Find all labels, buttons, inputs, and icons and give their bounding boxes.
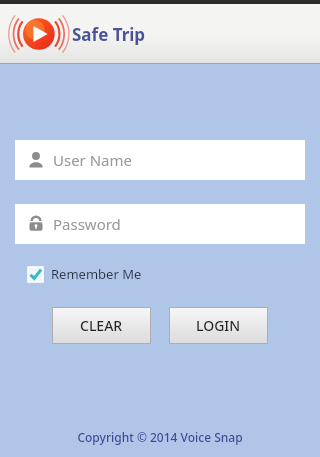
other: Safe Trip logo [14, 12, 68, 56]
button[interactable]: Remember Me [26, 263, 144, 285]
staticText: Copyright © 2014 Voice Snap [77, 429, 243, 445]
staticText: LOGIN [196, 316, 241, 335]
staticText: Safe Trip [72, 23, 146, 46]
staticText: Remember Me [51, 265, 142, 283]
staticText: Password [53, 214, 121, 234]
staticText: User Name [53, 150, 133, 170]
staticText: CLEAR [80, 316, 123, 335]
button[interactable]: LOGIN [169, 307, 268, 344]
button[interactable]: User Name [15, 140, 305, 180]
button[interactable]: CLEAR [52, 307, 151, 344]
button[interactable]: Password [15, 204, 305, 244]
